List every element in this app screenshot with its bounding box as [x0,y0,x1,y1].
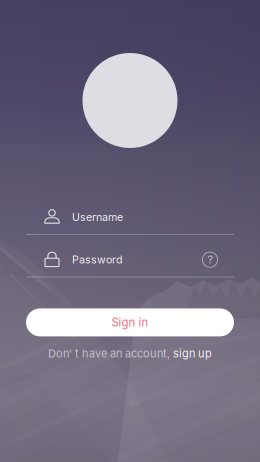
button[interactable]: Sign in [26,308,234,336]
staticText: ? [207,253,212,266]
staticText: Sign in [111,315,148,329]
staticText: Username [72,210,123,223]
button[interactable]: Password help [201,251,219,269]
staticText: Don' t have an account, [48,347,173,360]
button[interactable]: Don' t have an account, [48,345,212,361]
staticText: sign up [173,347,212,360]
staticText: Password [72,253,123,266]
